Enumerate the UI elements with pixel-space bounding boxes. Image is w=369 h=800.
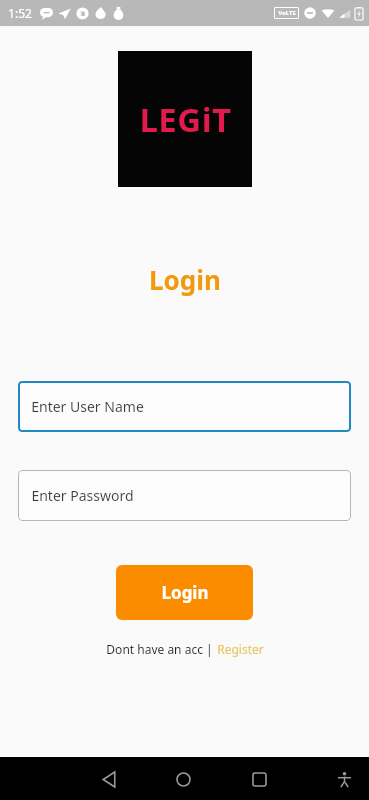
button[interactable]: Enter Password xyxy=(18,470,351,521)
staticText: VoLTE xyxy=(278,9,296,17)
staticText: 1:52 xyxy=(8,5,32,21)
button[interactable]: Register xyxy=(217,641,264,657)
button[interactable]: Login xyxy=(116,565,253,620)
staticText: Login xyxy=(161,581,209,604)
button[interactable]: Accessibility xyxy=(323,758,365,800)
staticText: Login xyxy=(149,262,221,297)
button[interactable]: Back xyxy=(88,758,130,800)
staticText: LEGiT xyxy=(139,97,232,142)
staticText: Enter User Name xyxy=(31,397,144,416)
button[interactable]: Home xyxy=(162,758,204,800)
staticText: Enter Password xyxy=(31,486,134,505)
staticText: Dont have an acc | xyxy=(106,641,213,657)
button[interactable]: Recent apps xyxy=(238,758,280,800)
staticText: Register xyxy=(217,641,264,657)
button[interactable]: Enter User Name xyxy=(18,381,351,432)
